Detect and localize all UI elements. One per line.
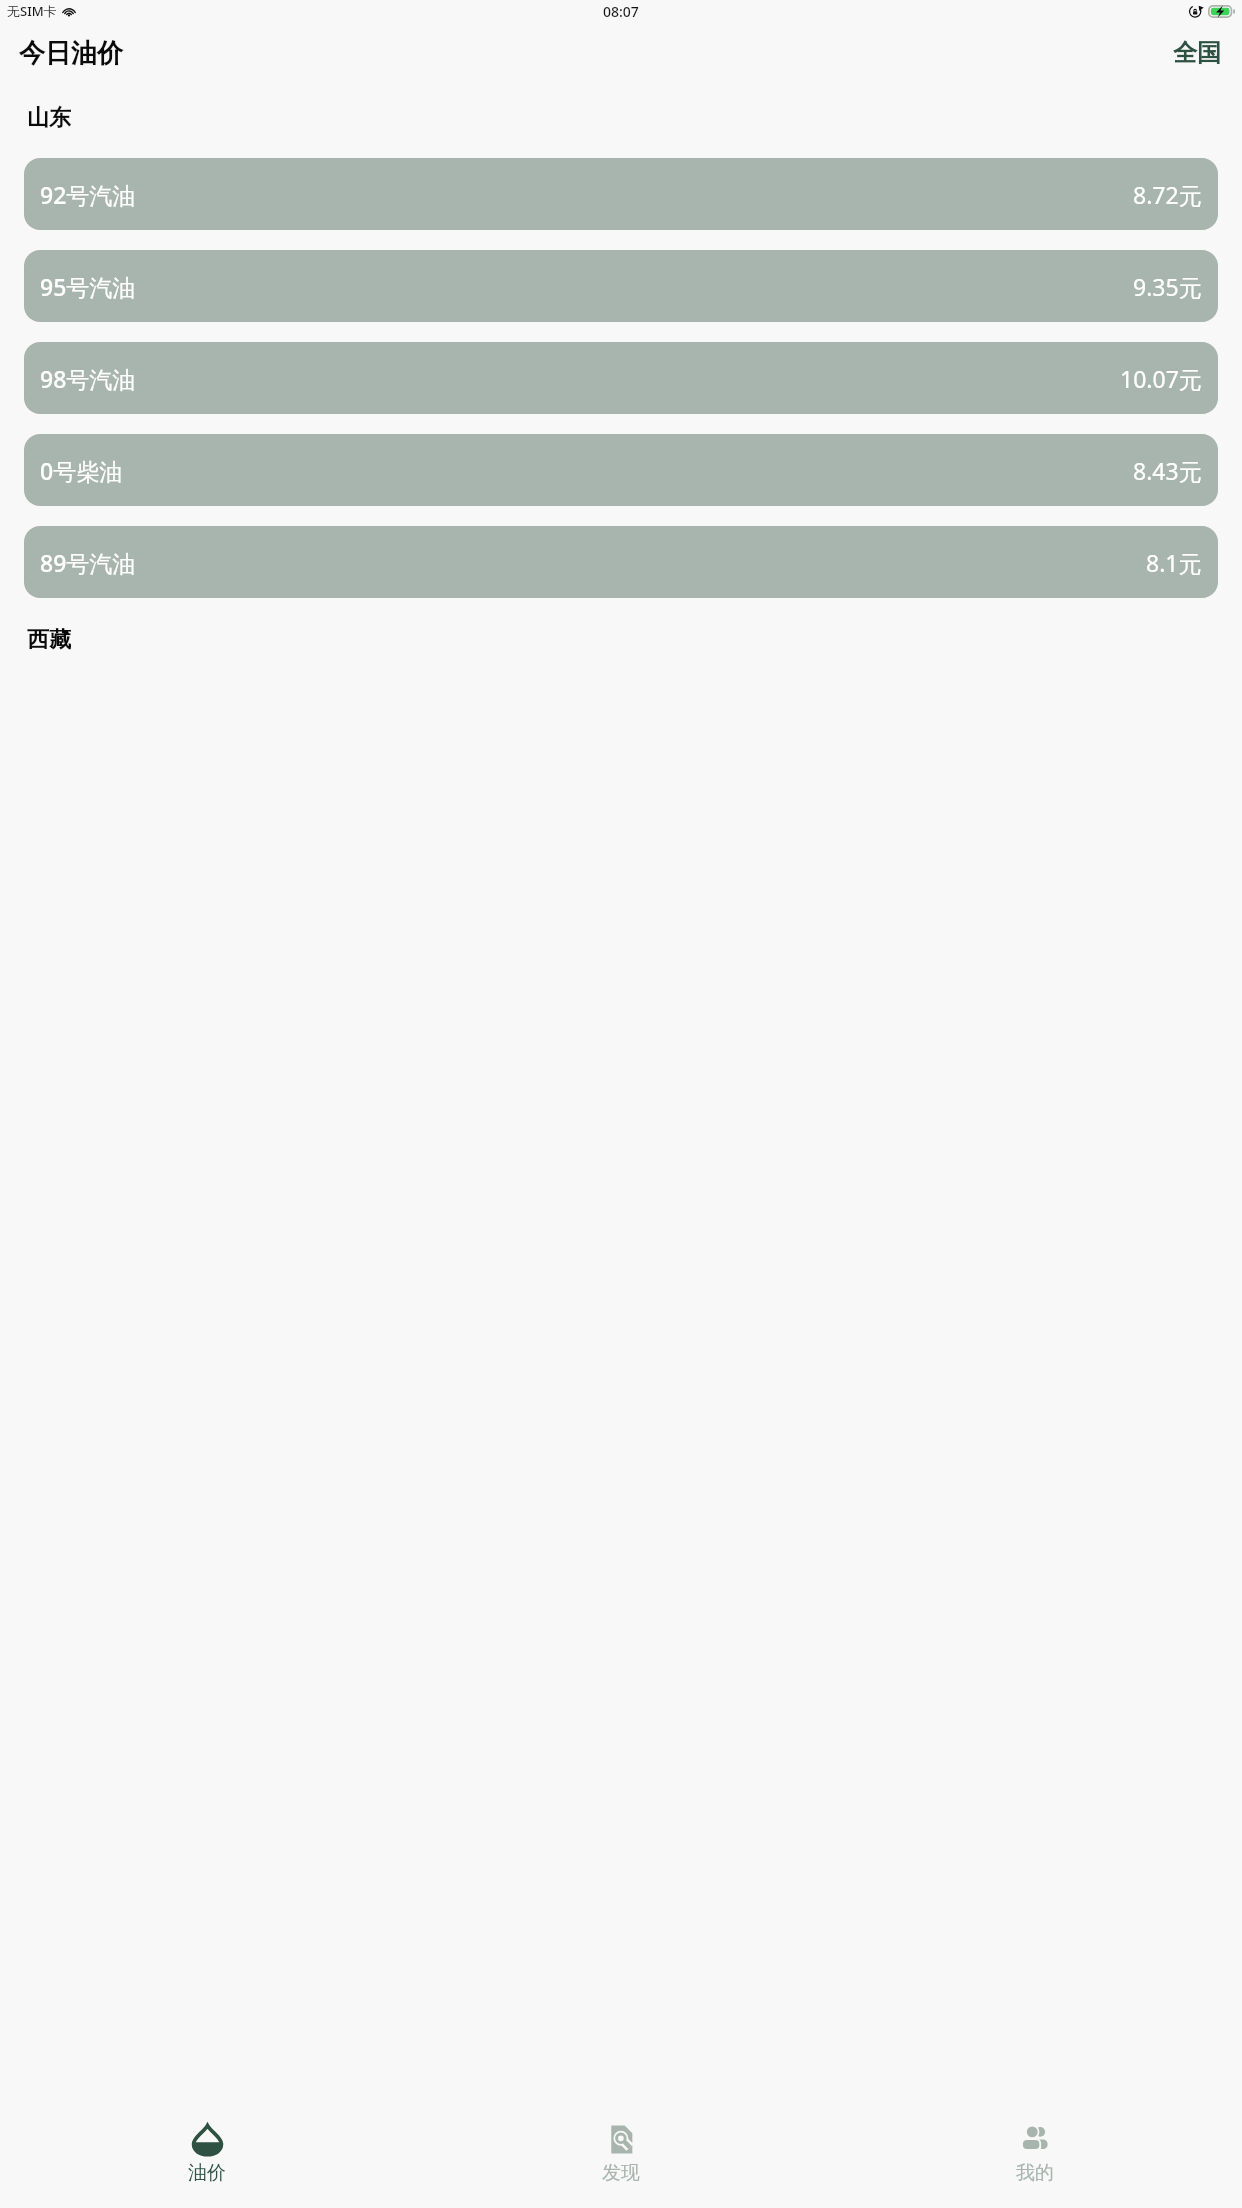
staticText: 我的 — [1016, 2161, 1054, 2185]
button[interactable]: 全国 — [1152, 29, 1242, 77]
button[interactable]: 发现 — [414, 2115, 828, 2185]
staticText: 发现 — [602, 2161, 640, 2185]
staticText: 8.72元 — [1133, 179, 1202, 210]
button[interactable]: 89号汽油 — [24, 526, 1218, 598]
staticText: 92号汽油 — [40, 179, 136, 210]
other: 我的 — [1020, 2124, 1051, 2155]
staticText: 全国 — [1173, 38, 1221, 68]
staticText: 08:07 — [603, 2, 639, 21]
staticText: 95号汽油 — [40, 271, 136, 302]
button[interactable]: 98号汽油 — [24, 342, 1218, 414]
button[interactable]: 92号汽油 — [24, 158, 1218, 230]
staticText: 无SIM卡 — [7, 2, 57, 20]
button[interactable]: 油价 — [0, 2115, 414, 2185]
staticText: 98号汽油 — [40, 363, 136, 394]
staticText: 8.1元 — [1146, 547, 1202, 578]
staticText: 0号柴油 — [40, 455, 123, 486]
staticText: 8.43元 — [1133, 455, 1202, 486]
staticText: 西藏 — [27, 626, 71, 652]
other: 发现 — [606, 2124, 637, 2155]
staticText: 油价 — [188, 2161, 226, 2185]
staticText: 89号汽油 — [40, 547, 136, 578]
staticText: 10.07元 — [1120, 363, 1202, 394]
staticText: 今日油价 — [19, 37, 123, 70]
button[interactable]: 我的 — [828, 2115, 1242, 2185]
button[interactable]: 0号柴油 — [24, 434, 1218, 506]
staticText: 9.35元 — [1133, 271, 1202, 302]
staticText: 山东 — [27, 104, 71, 132]
other: 油价 — [192, 2124, 223, 2155]
button[interactable]: 95号汽油 — [24, 250, 1218, 322]
